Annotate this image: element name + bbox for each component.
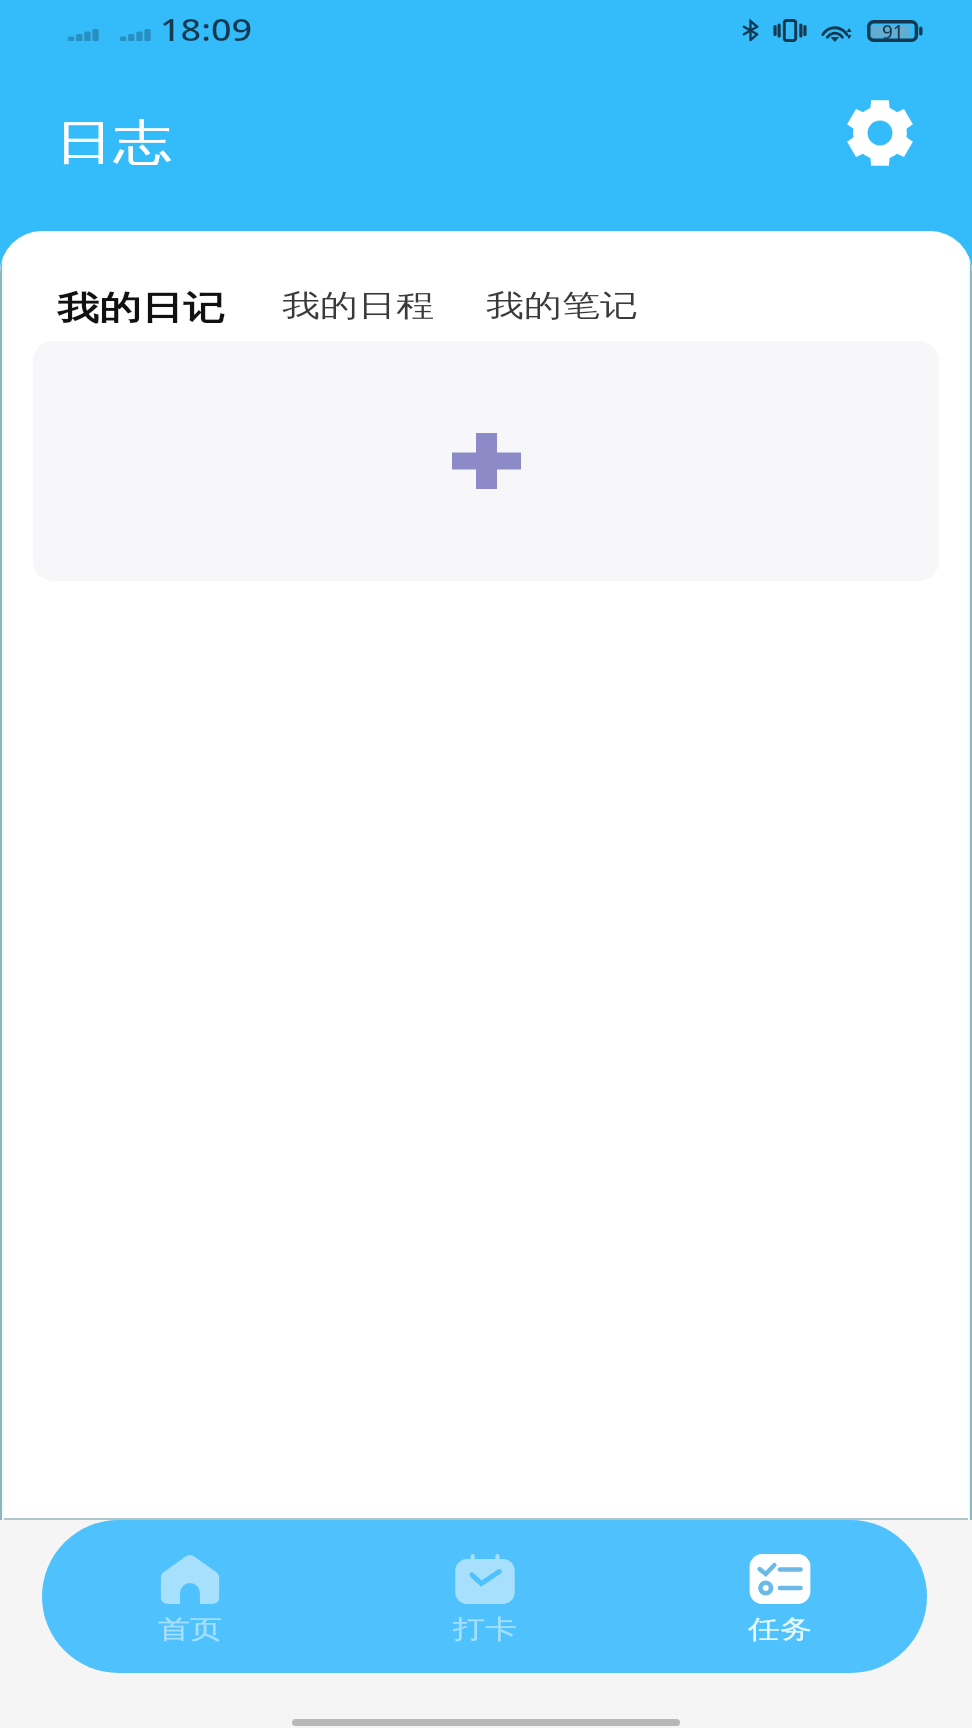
button[interactable]: 首页 — [42, 1520, 337, 1673]
staticText: 打卡 — [453, 1613, 517, 1645]
button[interactable]: 我的日记 — [57, 276, 225, 341]
button[interactable]: 我的日程 — [282, 276, 434, 336]
button[interactable]: 打卡 — [337, 1520, 632, 1673]
staticText: 我的笔记 — [486, 287, 638, 325]
button[interactable]: 任务 — [632, 1520, 927, 1673]
button[interactable]: Settings — [840, 93, 920, 173]
staticText: 日志 — [55, 112, 171, 173]
staticText: 91 — [882, 19, 904, 41]
button[interactable]: Add entry — [33, 341, 939, 581]
staticText: 我的日程 — [282, 287, 434, 325]
staticText: 18:09 — [160, 8, 253, 50]
button[interactable]: 我的笔记 — [486, 276, 638, 336]
staticText: 任务 — [748, 1613, 812, 1645]
staticText: 我的日记 — [57, 288, 225, 329]
staticText: 首页 — [158, 1613, 222, 1645]
